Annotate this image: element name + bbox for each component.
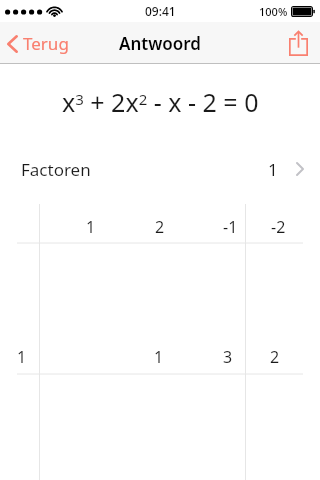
staticText: 1	[154, 346, 164, 368]
button[interactable]: Terug	[0, 28, 79, 59]
staticText: -1	[223, 216, 238, 238]
staticText: Antwoord	[119, 32, 201, 55]
staticText: 3	[223, 346, 233, 368]
staticText: 1	[268, 158, 278, 181]
staticText: 2	[155, 216, 165, 238]
staticText: Terug	[23, 32, 69, 55]
button[interactable]: Delen	[277, 26, 320, 60]
staticText: -2	[271, 216, 286, 238]
staticText: 1	[86, 216, 96, 238]
staticText: 100%	[259, 4, 288, 19]
staticText: Factoren	[21, 158, 91, 181]
staticText: 1	[17, 346, 27, 368]
staticText: 09:41	[145, 3, 176, 19]
button[interactable]: Factoren	[0, 140, 320, 198]
staticText: x3 + 2x2 - x - 2 = 0	[62, 85, 259, 119]
staticText: 2	[270, 346, 280, 368]
